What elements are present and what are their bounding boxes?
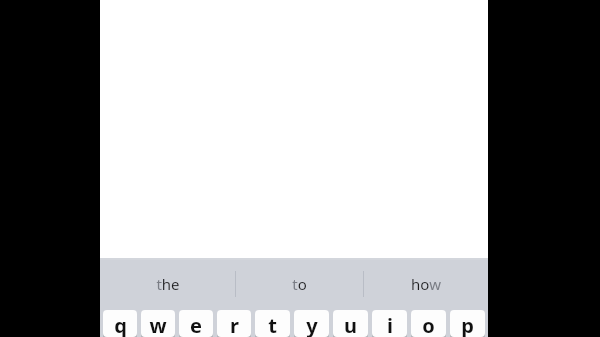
staticText: u	[344, 312, 357, 337]
staticText: q	[114, 312, 127, 337]
button[interactable]: i	[372, 310, 407, 337]
button[interactable]: to	[236, 258, 363, 310]
button[interactable]: p	[450, 310, 485, 337]
button[interactable]: t	[255, 310, 290, 337]
staticText: the	[156, 274, 180, 294]
button[interactable]: e	[179, 310, 213, 337]
staticText: e	[190, 312, 202, 337]
staticText: t	[268, 312, 277, 337]
staticText: to	[292, 274, 307, 294]
staticText: p	[461, 312, 474, 337]
staticText: i	[387, 312, 393, 337]
button[interactable]: r	[217, 310, 251, 337]
button[interactable]: how	[364, 258, 488, 310]
button[interactable]: q	[103, 310, 137, 337]
staticText: r	[230, 312, 239, 337]
staticText: how	[411, 274, 441, 294]
button[interactable]: w	[141, 310, 175, 337]
button[interactable]: o	[411, 310, 446, 337]
staticText: o	[422, 312, 435, 337]
button[interactable]: y	[294, 310, 329, 337]
button[interactable]: the	[100, 258, 235, 310]
staticText: y	[306, 312, 318, 337]
staticText: w	[149, 312, 167, 337]
button[interactable]: u	[333, 310, 368, 337]
